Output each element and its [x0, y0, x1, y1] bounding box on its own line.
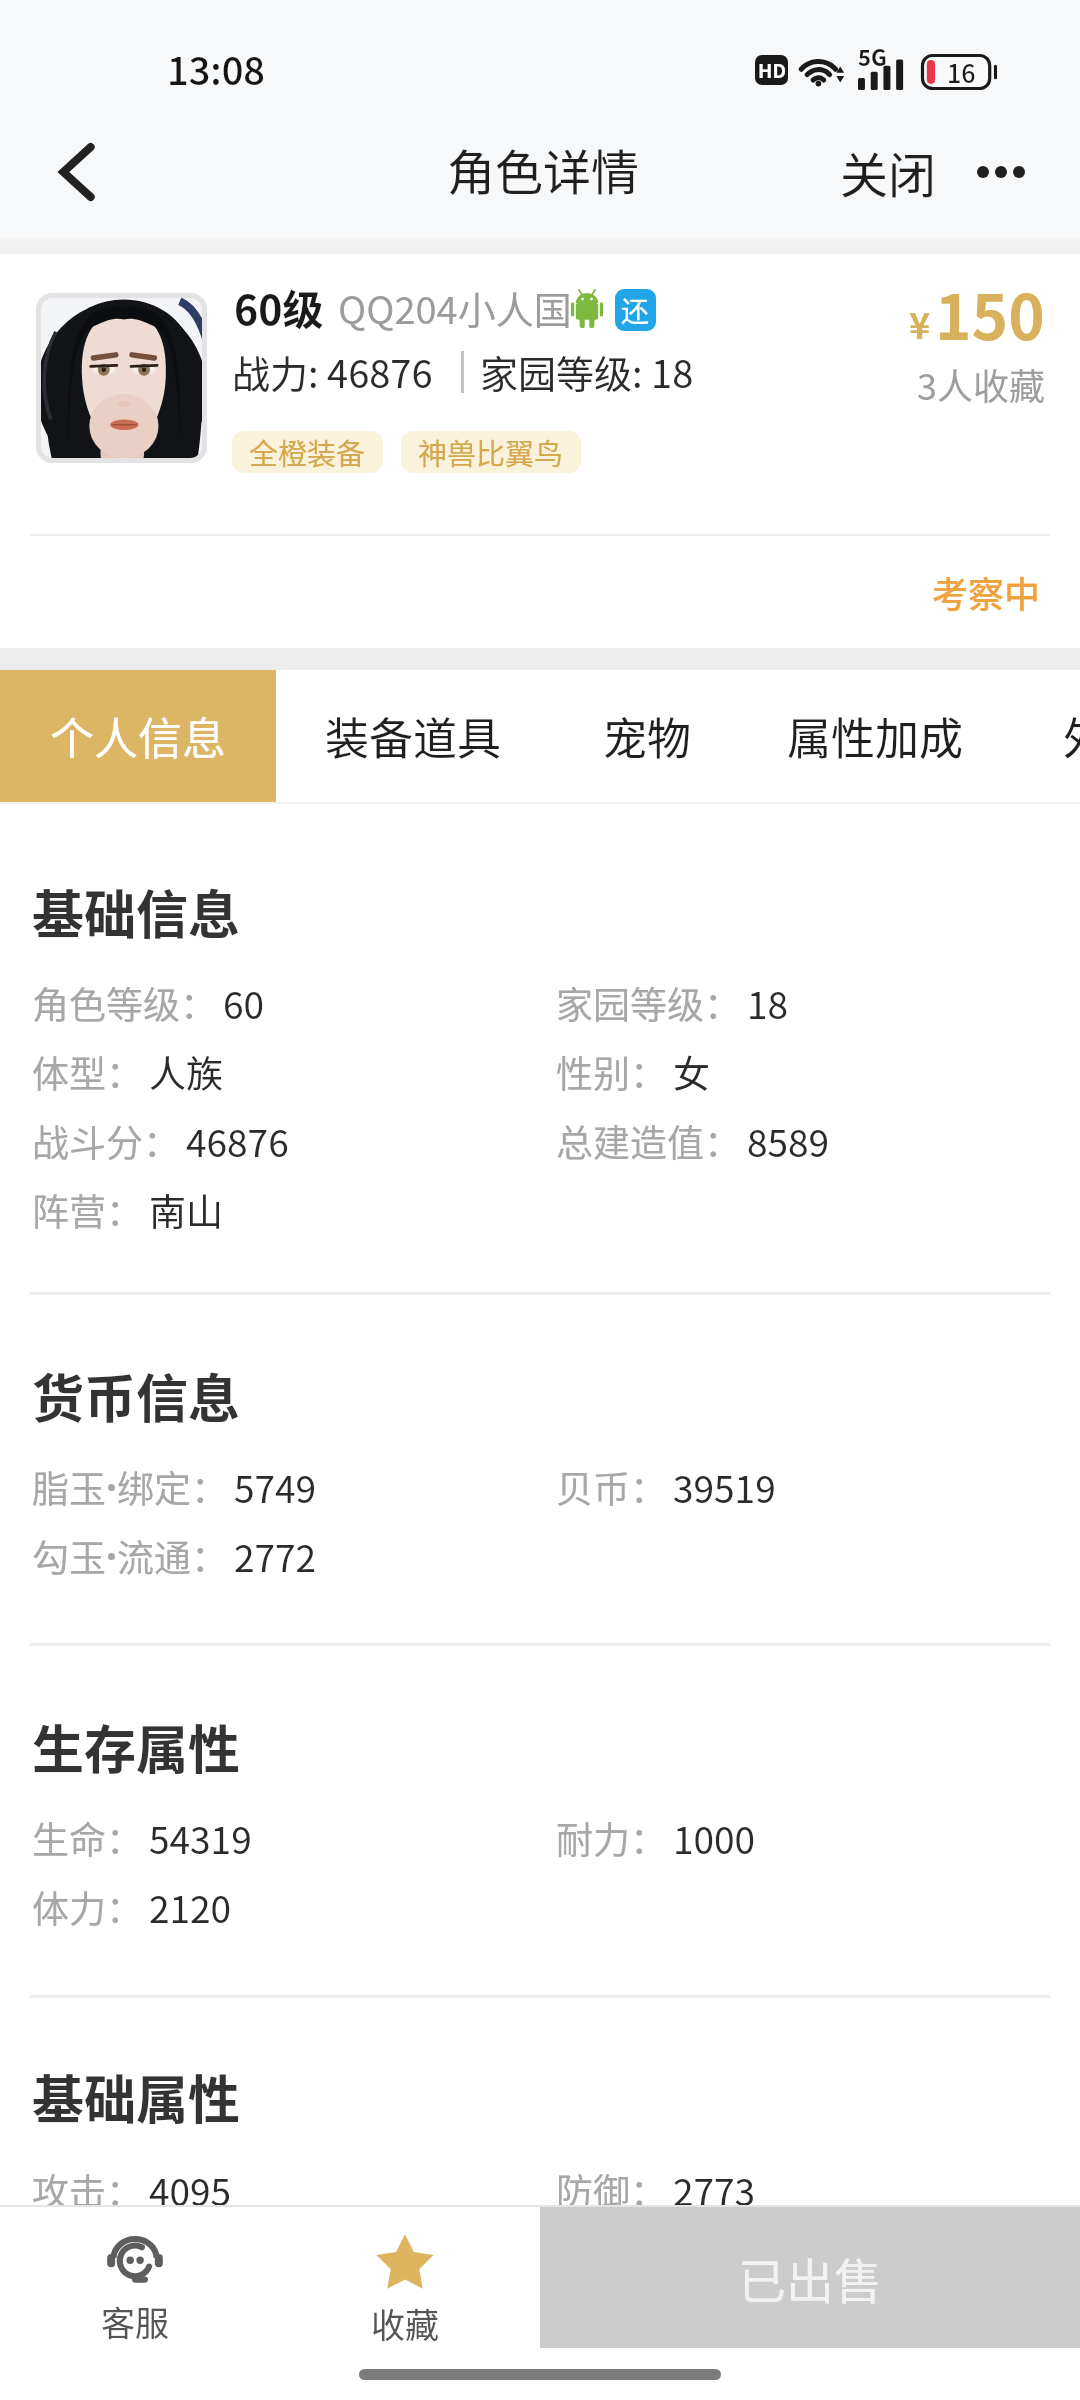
staticText: ：: [106, 1183, 143, 1237]
staticText: 角色详情: [447, 134, 640, 204]
staticText: 属性加成: [787, 704, 963, 768]
staticText: 全橙装备: [249, 431, 366, 473]
staticText: 个人信息: [50, 704, 226, 768]
staticText: ：: [106, 1880, 143, 1934]
staticText: 1000: [673, 1811, 756, 1865]
staticText: ：: [630, 1460, 667, 1514]
staticText: 8589: [747, 1114, 830, 1168]
staticText: 4095: [149, 2163, 232, 2217]
staticText: ：: [704, 976, 741, 1030]
staticText: 60: [223, 976, 265, 1030]
staticText: ¥: [909, 297, 931, 349]
button[interactable]: 宠物: [557, 670, 737, 802]
staticText: 150: [935, 268, 1045, 358]
staticText: 宠物: [603, 704, 691, 768]
staticText: 攻击: [32, 2163, 106, 2217]
staticText: 关闭: [840, 137, 937, 207]
staticText: ：: [630, 1045, 667, 1099]
staticText: QQ204小人国: [338, 280, 572, 335]
staticText: 总建造值: [556, 1114, 704, 1168]
staticText: ：: [704, 1114, 741, 1168]
staticText: 生存属性: [32, 1709, 241, 1784]
staticText: ：: [143, 1114, 180, 1168]
staticText: 2773: [673, 2163, 756, 2217]
staticText: 家园等级: [556, 976, 704, 1030]
staticText: 基础信息: [32, 874, 241, 949]
staticText: 家园等级: 18: [480, 344, 694, 399]
staticText: ：: [191, 1529, 228, 1583]
staticText: 绑定: [117, 1460, 191, 1514]
staticText: 5G: [858, 40, 887, 72]
staticText: 性别: [556, 1045, 630, 1099]
staticText: ：: [106, 2163, 143, 2217]
staticText: 战斗分: [32, 1114, 143, 1168]
staticText: 客服: [101, 2297, 169, 2346]
button[interactable]: 收藏: [270, 2207, 540, 2349]
button[interactable]: 客服: [0, 2207, 270, 2349]
staticText: 考察中: [932, 566, 1041, 618]
staticText: 女: [673, 1045, 710, 1099]
staticText: ：: [106, 1045, 143, 1099]
staticText: 2772: [234, 1529, 317, 1583]
staticText: 3人收藏: [917, 358, 1045, 410]
staticText: 基础属性: [32, 2059, 241, 2134]
staticText: 18: [747, 976, 789, 1030]
button[interactable]: 已出售: [540, 2207, 1080, 2348]
staticText: 体型: [32, 1045, 106, 1099]
staticText: ：: [180, 976, 217, 1030]
button[interactable]: More options: [955, 126, 1047, 218]
staticText: 39519: [673, 1460, 776, 1514]
staticText: 54319: [149, 1811, 252, 1865]
button[interactable]: 装备道具: [300, 670, 525, 802]
staticText: ：: [630, 2163, 667, 2217]
button[interactable]: 外: [1063, 670, 1080, 802]
staticText: 勾玉: [32, 1529, 106, 1583]
staticText: 战力: 46876: [232, 344, 433, 399]
staticText: 生命: [32, 1811, 106, 1865]
button[interactable]: 关闭: [825, 126, 951, 218]
staticText: 角色等级: [32, 976, 180, 1030]
staticText: 阵营: [32, 1183, 106, 1237]
staticText: ：: [106, 1811, 143, 1865]
staticText: 防御: [556, 2163, 630, 2217]
staticText: ：: [191, 1460, 228, 1514]
staticText: 耐力: [556, 1811, 630, 1865]
staticText: 13:08: [167, 41, 265, 96]
staticText: 5749: [234, 1460, 317, 1514]
staticText: 南山: [149, 1183, 223, 1237]
staticText: 贝币: [556, 1460, 630, 1514]
staticText: 神兽比翼鸟: [418, 431, 564, 473]
staticText: 装备道具: [325, 704, 501, 768]
staticText: HD: [758, 56, 786, 84]
staticText: 还: [621, 290, 650, 331]
button[interactable]: 个人信息: [0, 670, 276, 802]
staticText: 46876: [186, 1114, 289, 1168]
staticText: 体力: [32, 1880, 106, 1934]
staticText: 外: [1063, 704, 1080, 768]
staticText: 货币信息: [32, 1358, 241, 1433]
staticText: 16: [947, 54, 976, 90]
button[interactable]: 属性加成: [762, 670, 987, 802]
staticText: 脂玉: [32, 1460, 106, 1514]
staticText: 流通: [117, 1529, 191, 1583]
staticText: ：: [630, 1811, 667, 1865]
staticText: 收藏: [371, 2299, 439, 2348]
staticText: 已出售: [738, 2243, 883, 2313]
staticText: 2120: [149, 1880, 232, 1934]
button[interactable]: Back: [22, 117, 132, 227]
staticText: 人族: [149, 1045, 223, 1099]
staticText: 60级: [234, 277, 324, 336]
